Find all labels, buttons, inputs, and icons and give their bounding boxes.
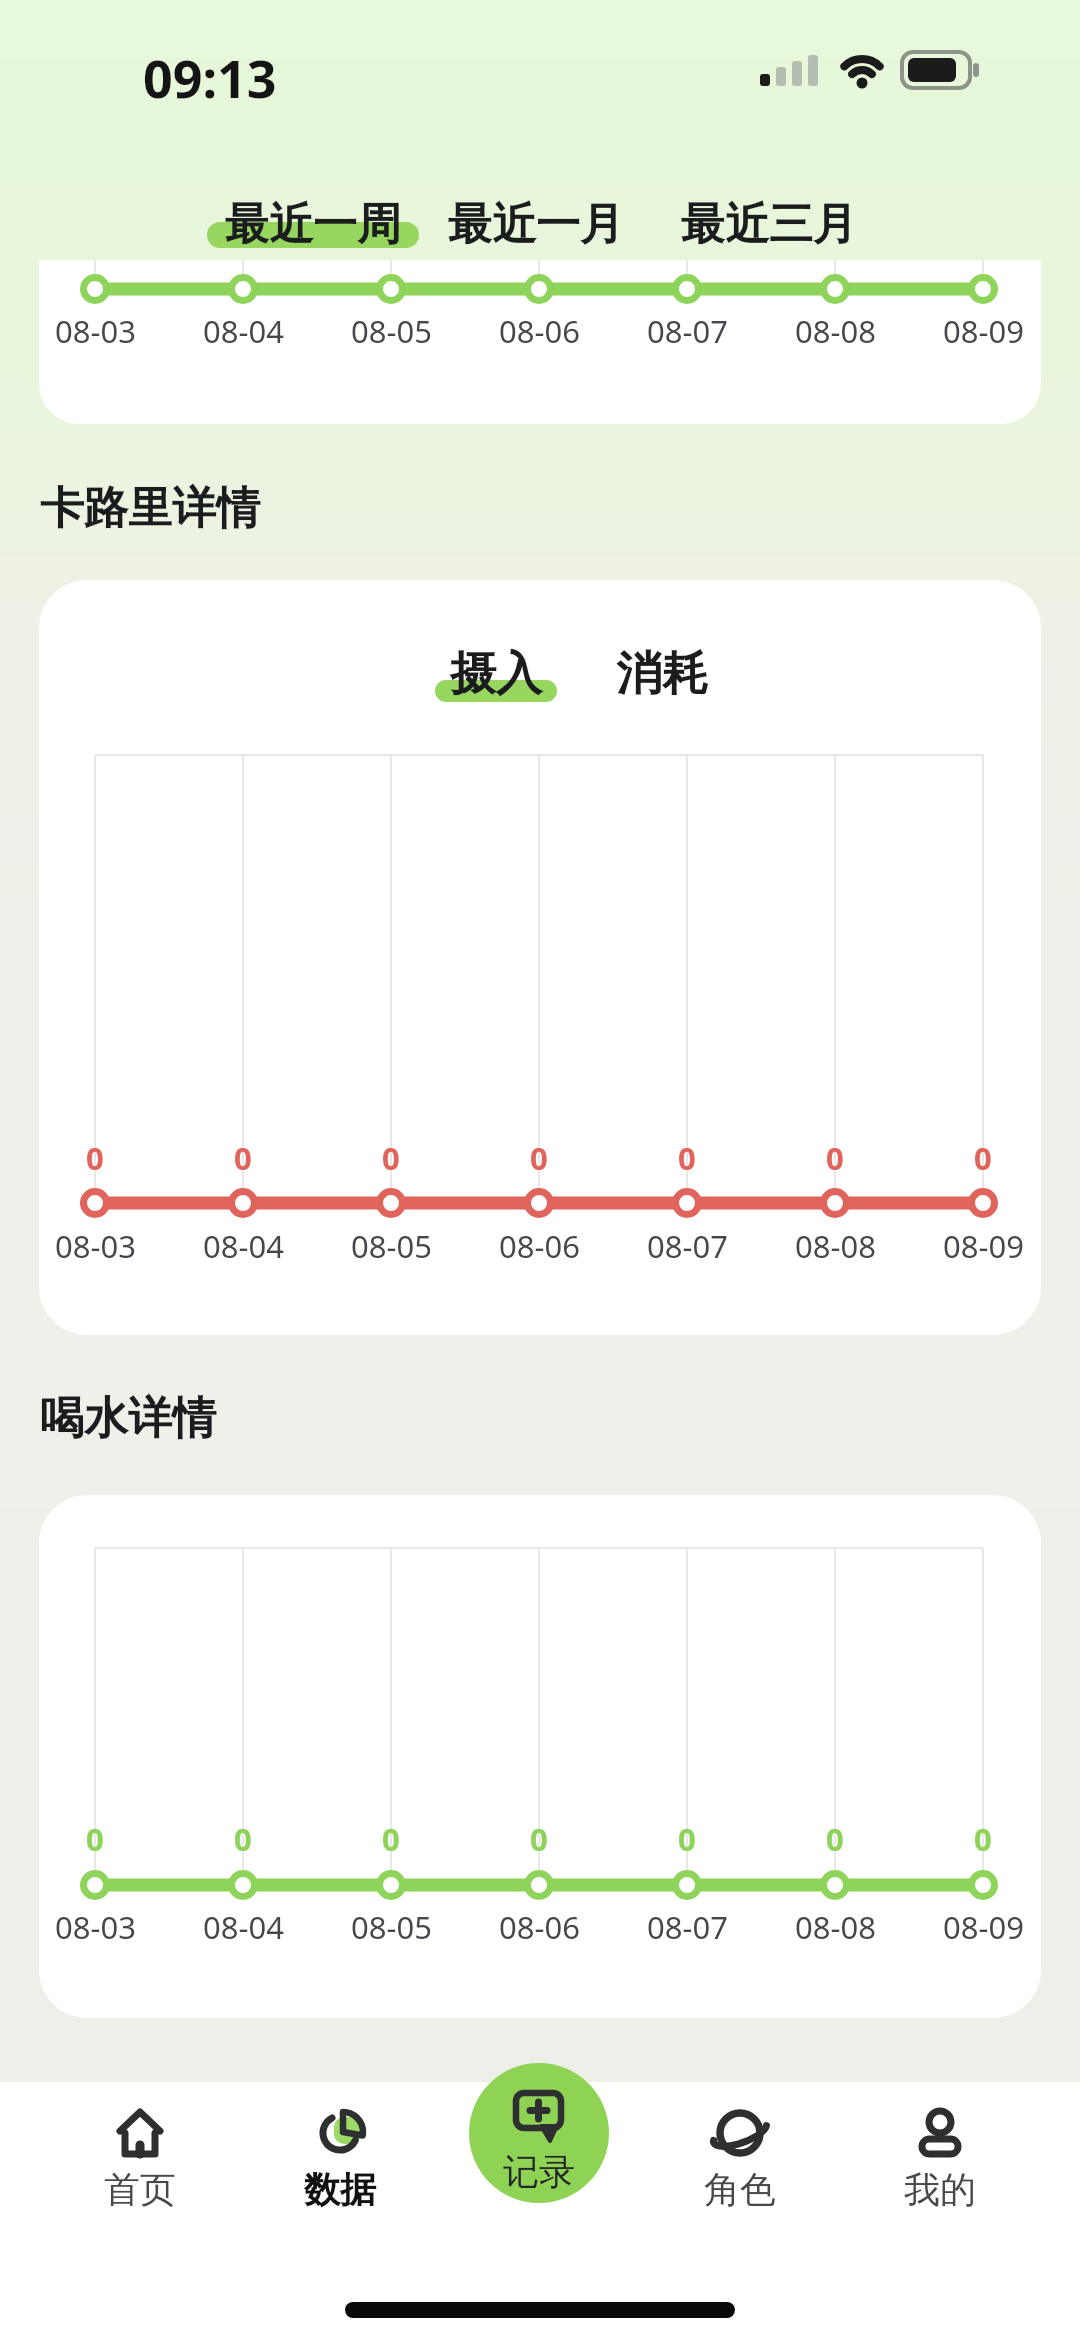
staticText: 08-07 <box>647 310 728 350</box>
staticText: 08-09 <box>943 1225 1024 1265</box>
button[interactable]: 记录 <box>469 2063 609 2203</box>
staticText: 08-08 <box>795 1906 876 1946</box>
button[interactable]: 我的 <box>860 2090 1020 2220</box>
staticText: 0 <box>382 1137 400 1177</box>
staticText: 0 <box>678 1818 696 1858</box>
button[interactable]: 数据 <box>260 2090 420 2220</box>
button[interactable]: 消耗 <box>582 645 742 703</box>
staticText: 08-03 <box>55 1225 136 1265</box>
staticText: 角色 <box>704 2167 776 2212</box>
staticText: 0 <box>234 1818 252 1858</box>
staticText: 喝水详情 <box>40 1391 216 1446</box>
staticText: 数据 <box>304 2167 376 2212</box>
staticText: 08-08 <box>795 1225 876 1265</box>
staticText: 卡路里详情 <box>40 481 260 536</box>
button[interactable]: 最近三月 <box>659 196 879 252</box>
staticText: 我的 <box>904 2167 976 2212</box>
staticText: 08-06 <box>499 310 580 350</box>
staticText: 0 <box>382 1818 400 1858</box>
staticText: 08-04 <box>203 310 284 350</box>
staticText: 消耗 <box>616 645 708 703</box>
button[interactable]: 摄入 <box>416 645 576 703</box>
staticText: 08-03 <box>55 1906 136 1946</box>
staticText: 08-05 <box>351 310 432 350</box>
staticText: 0 <box>974 1818 992 1858</box>
staticText: 09:13 <box>143 42 277 113</box>
staticText: 08-06 <box>499 1225 580 1265</box>
staticText: 0 <box>678 1137 696 1177</box>
staticText: 最近一周 <box>225 197 401 252</box>
staticText: 08-05 <box>351 1906 432 1946</box>
staticText: 0 <box>86 1137 104 1177</box>
staticText: 0 <box>530 1818 548 1858</box>
staticText: 08-09 <box>943 310 1024 350</box>
staticText: 08-07 <box>647 1906 728 1946</box>
staticText: 08-05 <box>351 1225 432 1265</box>
staticText: 08-04 <box>203 1906 284 1946</box>
staticText: 首页 <box>104 2167 176 2212</box>
staticText: 0 <box>974 1137 992 1177</box>
staticText: 0 <box>826 1137 844 1177</box>
button[interactable]: 最近一月 <box>426 196 646 252</box>
staticText: 最近一月 <box>448 197 624 252</box>
button[interactable]: 最近一周 <box>203 196 423 252</box>
button[interactable]: 首页 <box>60 2090 220 2220</box>
staticText: 记录 <box>503 2149 575 2194</box>
staticText: 摄入 <box>450 645 542 703</box>
staticText: 最近三月 <box>681 197 857 252</box>
staticText: 08-06 <box>499 1906 580 1946</box>
staticText: 0 <box>530 1137 548 1177</box>
staticText: 08-04 <box>203 1225 284 1265</box>
staticText: 08-03 <box>55 310 136 350</box>
staticText: 0 <box>234 1137 252 1177</box>
staticText: 08-09 <box>943 1906 1024 1946</box>
staticText: 0 <box>86 1818 104 1858</box>
staticText: 08-07 <box>647 1225 728 1265</box>
staticText: 0 <box>826 1818 844 1858</box>
button[interactable]: 角色 <box>660 2090 820 2220</box>
staticText: 08-08 <box>795 310 876 350</box>
